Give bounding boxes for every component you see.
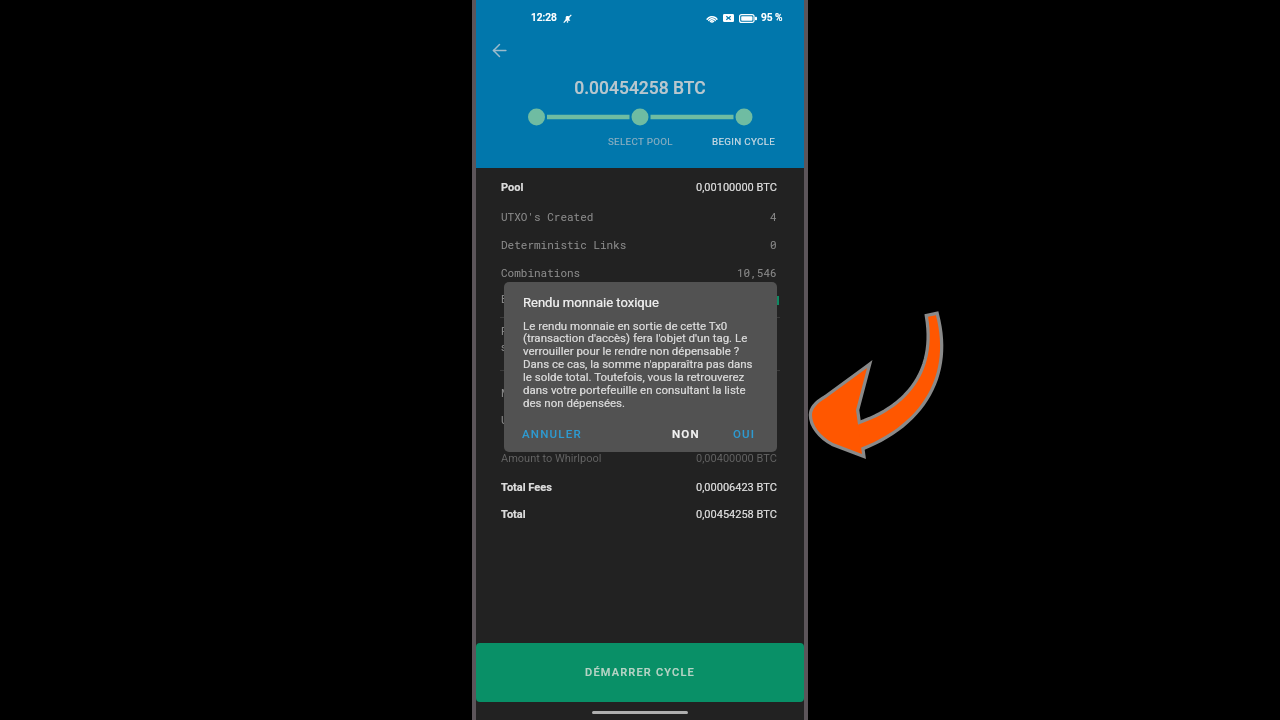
staticText: UTXO's Created [501, 209, 594, 224]
staticText: 95 % [761, 12, 783, 24]
staticText: NON [672, 427, 700, 440]
button[interactable]: OUI [733, 427, 756, 440]
staticText: Deterministic Links [501, 237, 627, 252]
button[interactable]: Amount to Whirlpool [476, 444, 804, 472]
button[interactable]: UTXOs [476, 406, 804, 434]
staticText: 0,00000000 BTC [696, 387, 777, 400]
button[interactable]: Bip47 notification [476, 285, 804, 313]
button[interactable]: Combinations [476, 258, 804, 286]
button[interactable]: sCode [476, 333, 804, 361]
staticText: 0,00000000 BTC [696, 325, 777, 338]
button[interactable]: DÉMARRER CYCLE [476, 643, 804, 702]
staticText: 0,00100000 BTC [696, 181, 777, 194]
staticText: SELECT POOL [608, 136, 673, 147]
staticText: 0,00400000 BTC [696, 452, 777, 465]
staticText: Mixing fee [501, 387, 552, 400]
staticText: Rendu monnaie toxique [523, 295, 659, 310]
staticText: ANNULER [522, 427, 582, 440]
button[interactable]: Pool [476, 173, 804, 201]
staticText: Le rendu monnaie en sortie de cette Tx0 … [523, 319, 753, 410]
staticText: OUI [733, 427, 756, 440]
button[interactable]: ANNULER [522, 427, 582, 440]
staticText: 12:28 [531, 12, 557, 24]
button[interactable]: UTXO's Created [476, 202, 804, 230]
button[interactable]: Total [476, 500, 804, 528]
staticText: UTXOs [501, 414, 535, 427]
staticText: sCode [501, 341, 533, 354]
staticText: Combinations [501, 265, 581, 280]
staticText: 4 [770, 209, 777, 224]
button[interactable]: NON [672, 427, 700, 440]
button[interactable]: Pool fee [476, 317, 804, 345]
staticText: 0,00454258 BTC [696, 508, 777, 521]
staticText: 0,00006423 BTC [696, 481, 777, 494]
staticText: Pool fee [501, 325, 542, 338]
staticText: BEGIN CYCLE [712, 136, 776, 147]
staticText: 0.00454258 BTC [476, 78, 804, 99]
staticText: Bip47 notification [501, 293, 587, 306]
button[interactable]: Total Fees [476, 473, 804, 501]
staticText: DÉMARRER CYCLE [585, 666, 696, 679]
staticText: Amount to Whirlpool [501, 452, 602, 465]
staticText: Pool [501, 181, 524, 194]
button[interactable]: Mixing fee [476, 379, 804, 407]
staticText: 0 [770, 237, 777, 252]
button[interactable]: Back [485, 36, 513, 64]
staticText: 10,546 [737, 265, 777, 280]
button[interactable]: Deterministic Links [476, 230, 804, 258]
staticText: Total Fees [501, 481, 552, 494]
staticText: Total [501, 508, 526, 521]
